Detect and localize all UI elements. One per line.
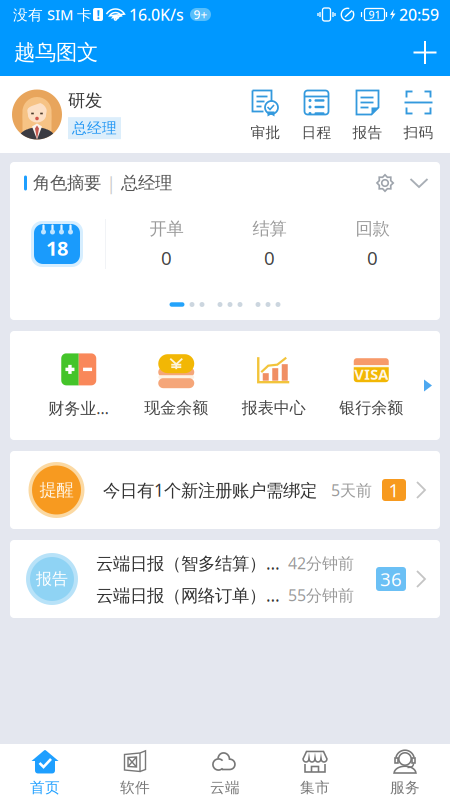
staticText: 0: [161, 245, 172, 270]
staticText: !: [96, 6, 99, 22]
staticText: 20:59: [399, 4, 439, 25]
staticText: 报表中心: [242, 398, 306, 418]
staticText: 银行余额: [339, 398, 403, 418]
staticText: 报告: [36, 569, 68, 589]
button[interactable]: 现金余额: [127, 353, 225, 418]
staticText: 0: [367, 245, 378, 270]
staticText: 报告: [352, 123, 382, 141]
staticText: 审批: [250, 123, 280, 141]
button[interactable]: 提醒: [10, 451, 440, 529]
staticText: 16.0K/s: [129, 4, 184, 25]
button[interactable]: 集市: [270, 742, 360, 800]
button[interactable]: 报表中心: [225, 353, 322, 418]
staticText: 开单: [149, 218, 183, 239]
staticText: 36: [380, 567, 402, 591]
button[interactable]: VISA: [322, 353, 420, 418]
button[interactable]: Add: [402, 29, 448, 75]
staticText: 首页: [30, 778, 60, 796]
button[interactable]: Collapse: [402, 166, 436, 200]
staticText: VISA: [354, 364, 388, 384]
staticText: 云端: [210, 778, 240, 796]
button[interactable]: 扫码: [393, 87, 444, 141]
button[interactable]: 服务: [360, 742, 450, 800]
staticText: 0: [264, 245, 275, 270]
button[interactable]: 财务业…: [30, 352, 127, 419]
staticText: 总经理: [121, 172, 172, 194]
button[interactable]: 报告: [342, 87, 393, 141]
staticText: 5天前: [331, 479, 372, 501]
button[interactable]: 报告: [10, 540, 440, 618]
staticText: 财务业…: [48, 397, 109, 419]
button[interactable]: 审批: [240, 87, 291, 141]
staticText: 今日有1个新注册账户需绑定: [103, 478, 317, 501]
staticText: 越鸟图文: [14, 39, 98, 66]
staticText: 集市: [300, 778, 330, 796]
staticText: 扫码: [403, 123, 433, 141]
staticText: 服务: [390, 778, 420, 796]
staticText: 42分钟前: [288, 552, 354, 574]
staticText: 软件: [120, 778, 150, 796]
staticText: 研发: [68, 90, 102, 111]
staticText: 1: [388, 478, 399, 502]
staticText: 18: [46, 235, 68, 261]
button[interactable]: 日程: [291, 87, 342, 141]
staticText: 现金余额: [144, 398, 208, 418]
staticText: |: [106, 171, 116, 195]
button[interactable]: 云端: [180, 742, 270, 800]
button[interactable]: 研发: [12, 89, 121, 139]
staticText: 云端日报（智多结算）…: [96, 551, 280, 574]
staticText: 55分钟前: [288, 584, 354, 606]
staticText: 云端日报（网络订单）…: [96, 583, 280, 606]
staticText: 9+: [193, 6, 207, 22]
staticText: 91: [368, 7, 380, 22]
staticText: 日程: [301, 123, 331, 141]
staticText: 结算: [252, 218, 286, 239]
button[interactable]: 首页: [0, 742, 90, 800]
staticText: 没有 SIM 卡: [13, 5, 92, 24]
staticText: 角色摘要: [33, 172, 101, 194]
button[interactable]: Settings: [368, 166, 402, 200]
button[interactable]: 软件: [90, 742, 180, 800]
staticText: 提醒: [39, 479, 73, 501]
staticText: 回款: [355, 218, 389, 239]
staticText: 总经理: [72, 119, 117, 137]
